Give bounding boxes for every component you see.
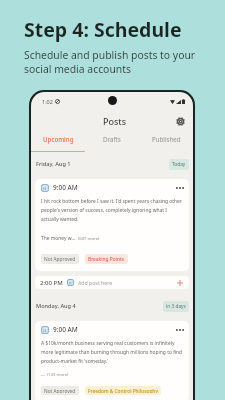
staticText: Not Approved [44, 388, 76, 393]
staticText: Breaking Points [88, 256, 125, 262]
staticText: Upcoming [43, 135, 74, 143]
staticText: Friday, Aug 1 [36, 160, 71, 168]
staticText: in 3 days [166, 303, 186, 310]
staticText: Not Approved [44, 256, 76, 262]
staticText: (607 more) [78, 236, 100, 242]
staticText: 1:02 [42, 98, 53, 105]
button[interactable]: Settings [173, 114, 187, 128]
staticText: Published [152, 135, 181, 143]
button[interactable]: 9:00 AM [35, 179, 189, 271]
staticText: Drafts [103, 135, 121, 143]
staticText: 9:00 AM [53, 183, 78, 192]
button[interactable]: Published [139, 131, 193, 152]
staticText: Monday, Aug 4 [36, 302, 76, 310]
button[interactable]: Drafts [85, 131, 139, 152]
staticText: Posts [103, 115, 127, 127]
staticText: Schedule and publish posts to your socia… [24, 48, 196, 76]
staticText: 9:00 AM [53, 325, 78, 334]
staticText: ... [41, 371, 45, 378]
staticText: (123 more) [47, 372, 69, 378]
button[interactable]: More options [174, 324, 185, 335]
staticText: A $10k/month business serving real custo… [41, 340, 183, 364]
button[interactable]: 9:00 AM [35, 321, 189, 400]
staticText: The money w... [41, 235, 76, 242]
button[interactable]: 2:00 PM [35, 276, 189, 289]
staticText: Step 4: Schedule [24, 16, 182, 43]
staticText: Freedom & Control Philosophy [88, 388, 158, 393]
staticText: Today [172, 161, 186, 168]
button[interactable]: Upcoming [31, 131, 85, 152]
staticText: Add post here [78, 279, 113, 286]
staticText: I hit rock bottom before I saw it. I'd s… [41, 198, 182, 222]
button[interactable]: More options [174, 182, 185, 193]
staticText: 2:00 PM [40, 279, 63, 287]
